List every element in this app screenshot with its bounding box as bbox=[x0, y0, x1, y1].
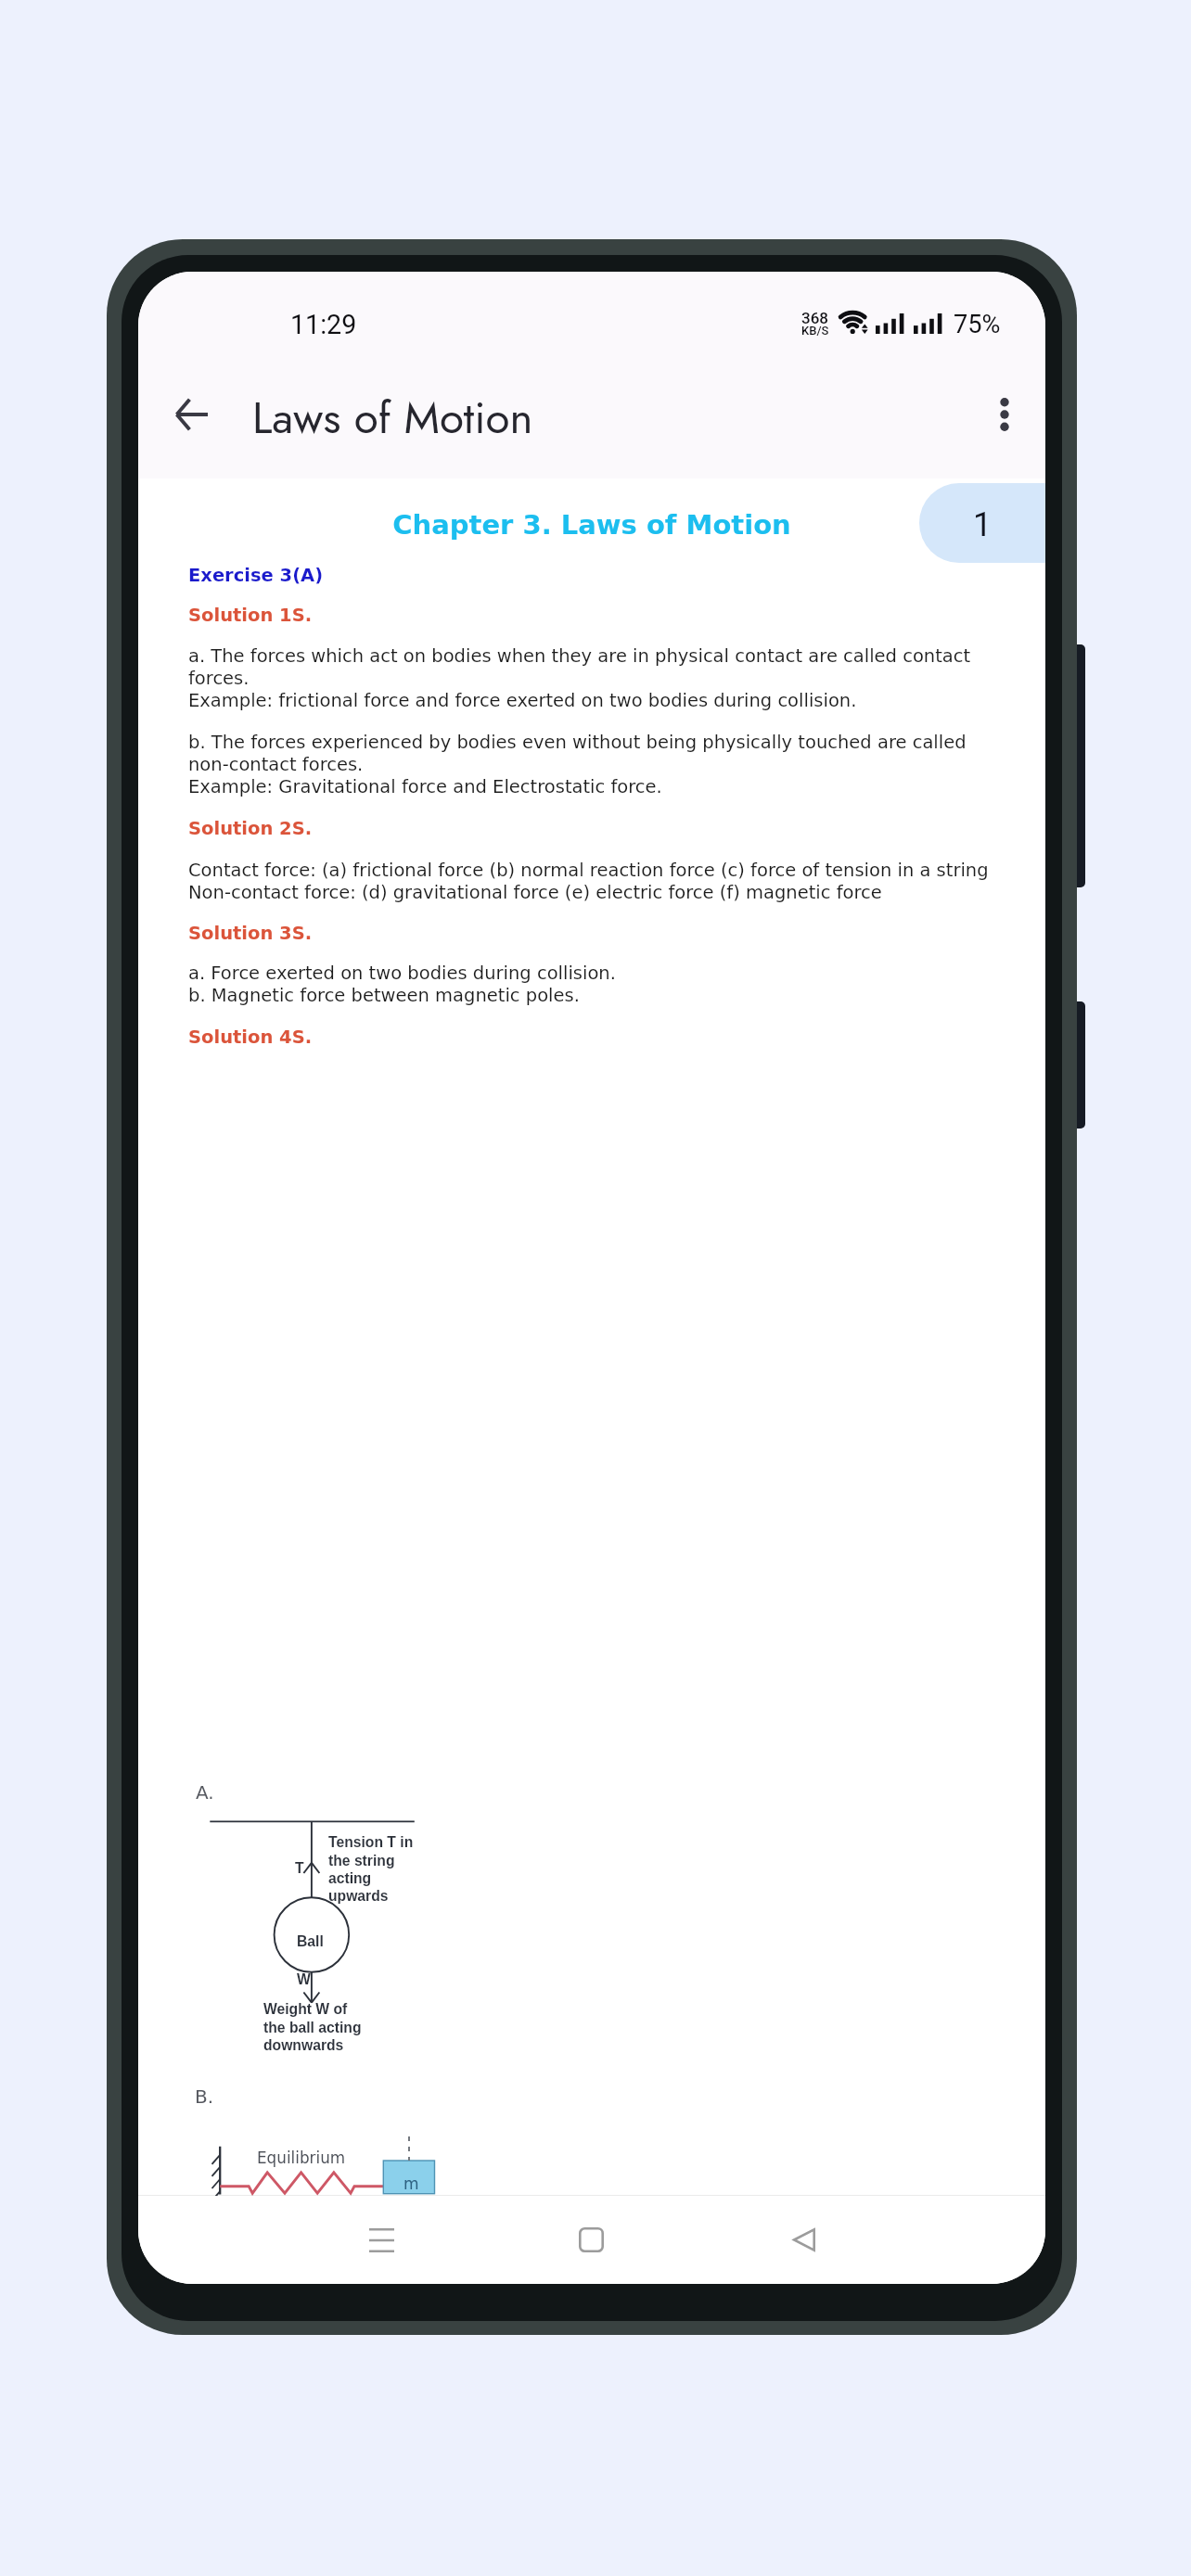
staticText: a. Force exerted on two bodies during co… bbox=[188, 963, 997, 1006]
button[interactable]: Back bbox=[766, 2200, 840, 2279]
button[interactable]: Recent apps bbox=[344, 2200, 418, 2279]
staticText: Equilibrium bbox=[257, 2149, 346, 2167]
staticText: Laws of Motion bbox=[252, 386, 533, 450]
staticText: Chapter 3. Laws of Motion bbox=[138, 509, 1045, 541]
button[interactable]: Back bbox=[154, 377, 228, 452]
staticText: Ball bbox=[297, 1933, 324, 1950]
staticText: Solution 1S. bbox=[188, 605, 997, 626]
staticText: Tension T in the string acting upwards bbox=[328, 1834, 414, 1904]
staticText: a. The forces which act on bodies when t… bbox=[188, 645, 997, 711]
button[interactable]: Home bbox=[554, 2200, 628, 2279]
staticText: 75% bbox=[954, 310, 1001, 339]
staticText: W bbox=[297, 1971, 311, 1988]
staticText: Exercise 3(A) bbox=[188, 565, 997, 586]
staticText: Weight W of the ball acting downwards bbox=[263, 2001, 362, 2053]
button[interactable]: 1 bbox=[919, 483, 1045, 563]
staticText: Solution 4S. bbox=[188, 1027, 997, 1048]
staticText: Solution 2S. bbox=[188, 818, 997, 839]
staticText: Contact force: (a) frictional force (b) … bbox=[188, 860, 997, 903]
staticText: 11:29 bbox=[290, 309, 357, 340]
staticText: 1 bbox=[973, 505, 992, 544]
staticText: Solution 3S. bbox=[188, 923, 997, 944]
staticText: T bbox=[295, 1860, 304, 1877]
staticText: b. The forces experienced by bodies even… bbox=[188, 732, 997, 797]
staticText: A. bbox=[196, 1781, 214, 1803]
staticText: B. bbox=[195, 2085, 214, 2107]
staticText: 368 bbox=[801, 309, 828, 327]
button[interactable]: More options bbox=[967, 377, 1042, 452]
staticText: KB/S bbox=[801, 324, 829, 338]
staticText: m bbox=[403, 2174, 419, 2193]
